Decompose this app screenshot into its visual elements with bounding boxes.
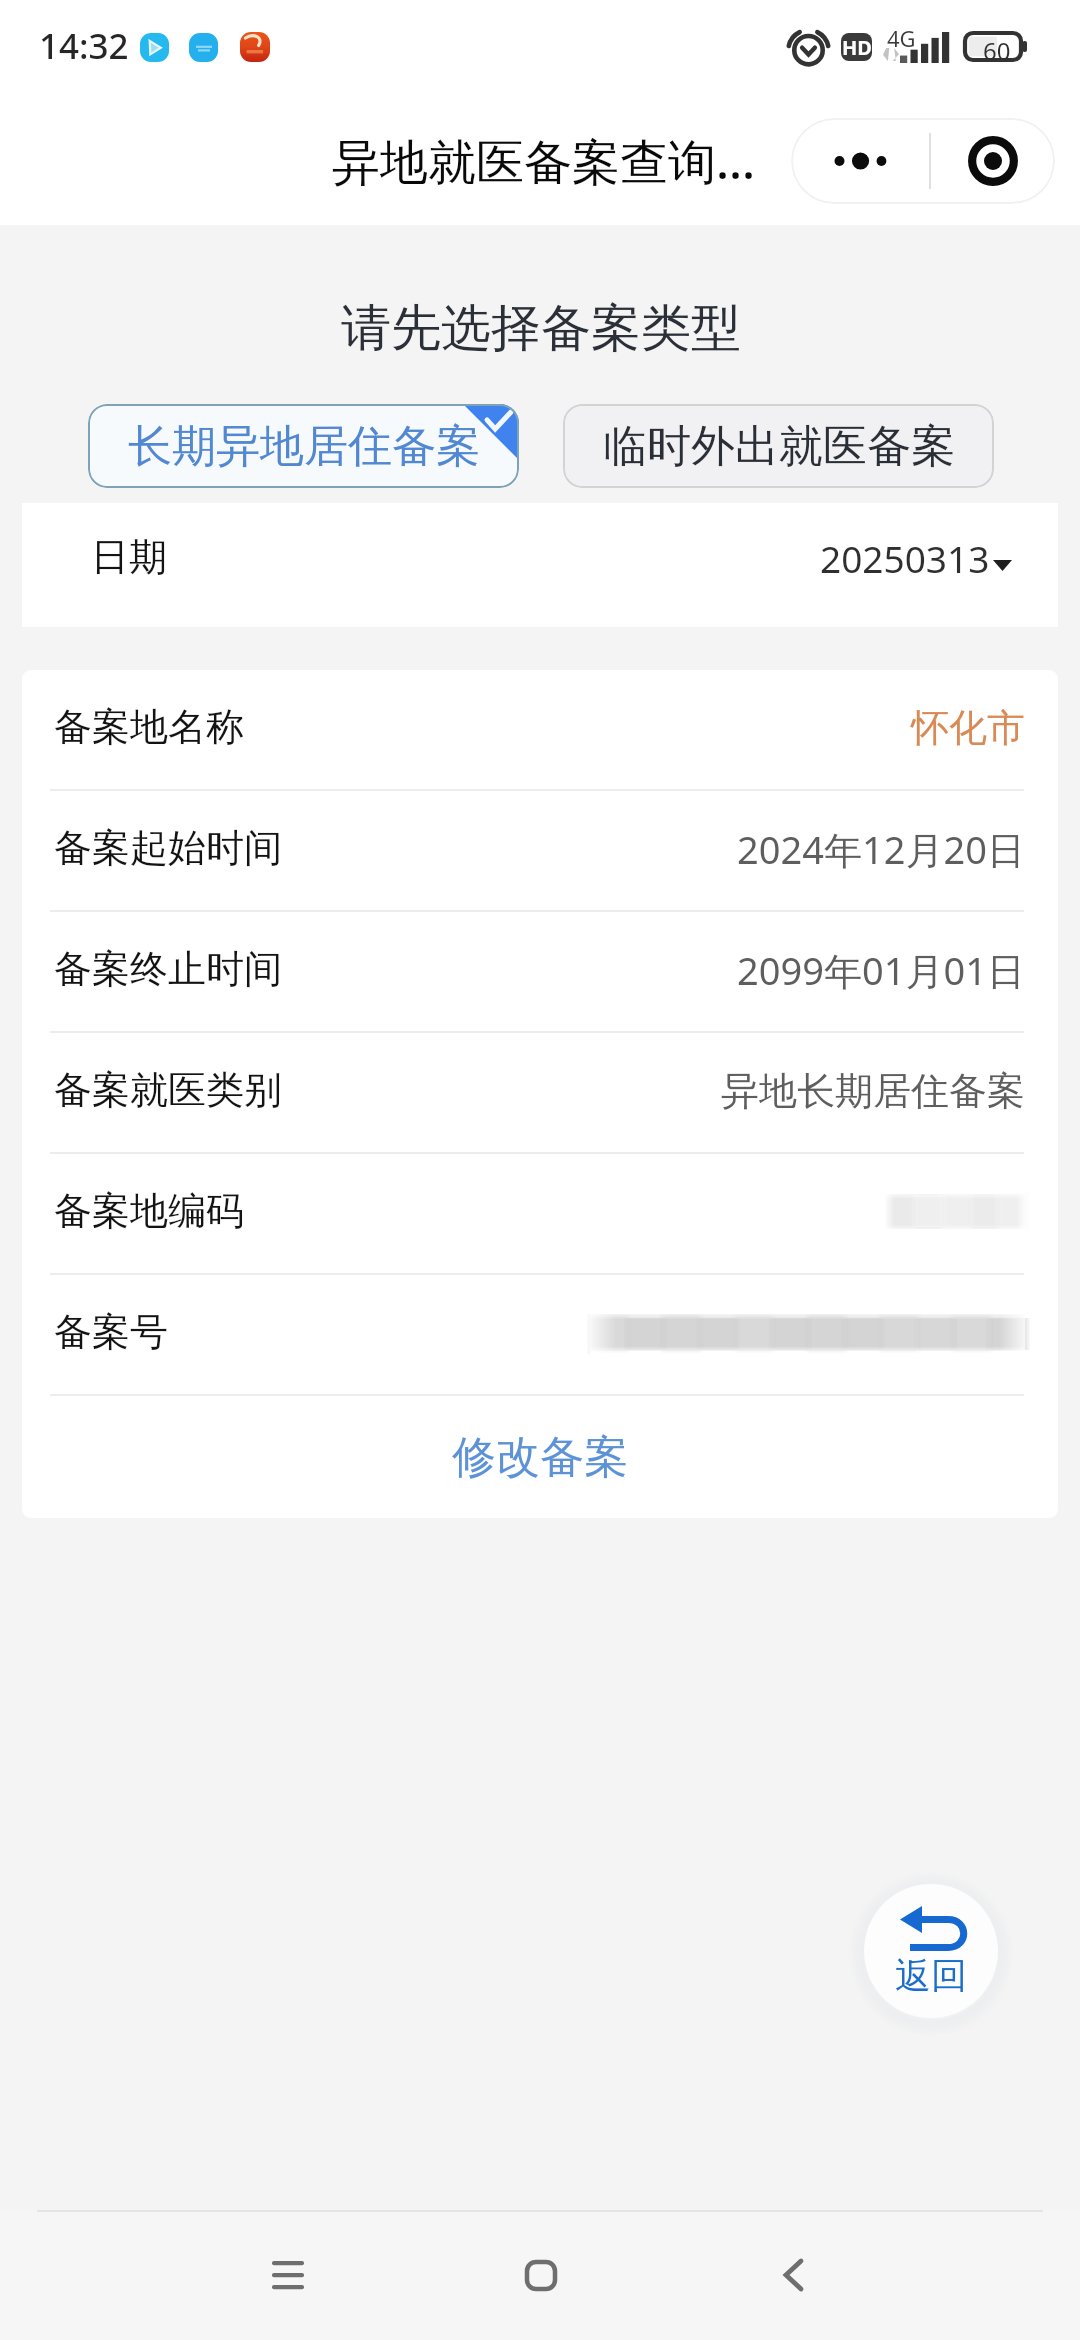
- staticText: 2099年01月01日: [737, 944, 1025, 996]
- staticText: 修改备案: [452, 1430, 628, 1485]
- staticText: 怀化市: [911, 704, 1025, 752]
- button[interactable]: More: [791, 118, 929, 204]
- button[interactable]: 长期异地居住备案: [88, 404, 519, 488]
- staticText: 备案地编码: [54, 1187, 244, 1235]
- staticText: 请先选择备案类型: [341, 297, 741, 360]
- button[interactable]: 备案地编码: [22, 1154, 1058, 1273]
- staticText: HD: [842, 34, 872, 61]
- staticText: 14:32: [39, 22, 129, 70]
- staticText: 备案地名称: [54, 703, 244, 751]
- button[interactable]: Recent apps: [228, 2230, 348, 2320]
- button[interactable]: 修改备案: [22, 1396, 1058, 1518]
- button[interactable]: 备案就医类别: [22, 1033, 1058, 1152]
- staticText: 4G: [887, 23, 916, 53]
- staticText: 60: [983, 34, 1011, 67]
- button[interactable]: 返回: [864, 1884, 998, 2018]
- button[interactable]: 备案地名称: [22, 670, 1058, 789]
- staticText: 备案号: [54, 1308, 168, 1356]
- button[interactable]: Close mini program: [931, 118, 1055, 204]
- button[interactable]: 备案起始时间: [22, 791, 1058, 910]
- button[interactable]: 临时外出就医备案: [563, 404, 994, 488]
- staticText: 返回: [895, 1953, 967, 1998]
- button[interactable]: 备案终止时间: [22, 912, 1058, 1031]
- staticText: 20250313: [820, 533, 990, 583]
- staticText: 备案就医类别: [54, 1066, 282, 1114]
- staticText: 临时外出就医备案: [603, 419, 955, 474]
- staticText: 长期异地居住备案: [128, 419, 480, 474]
- staticText: 2024年12月20日: [737, 823, 1025, 875]
- staticText: 备案起始时间: [54, 824, 282, 872]
- button[interactable]: Back: [733, 2230, 853, 2320]
- staticText: 日期: [91, 533, 167, 581]
- staticText: 备案终止时间: [54, 945, 282, 993]
- button[interactable]: 备案号: [22, 1275, 1058, 1394]
- button[interactable]: 日期: [22, 503, 1058, 627]
- staticText: 异地长期居住备案: [721, 1067, 1025, 1115]
- button[interactable]: Home: [481, 2230, 601, 2320]
- staticText: 异地就医备案查询...: [332, 128, 756, 194]
